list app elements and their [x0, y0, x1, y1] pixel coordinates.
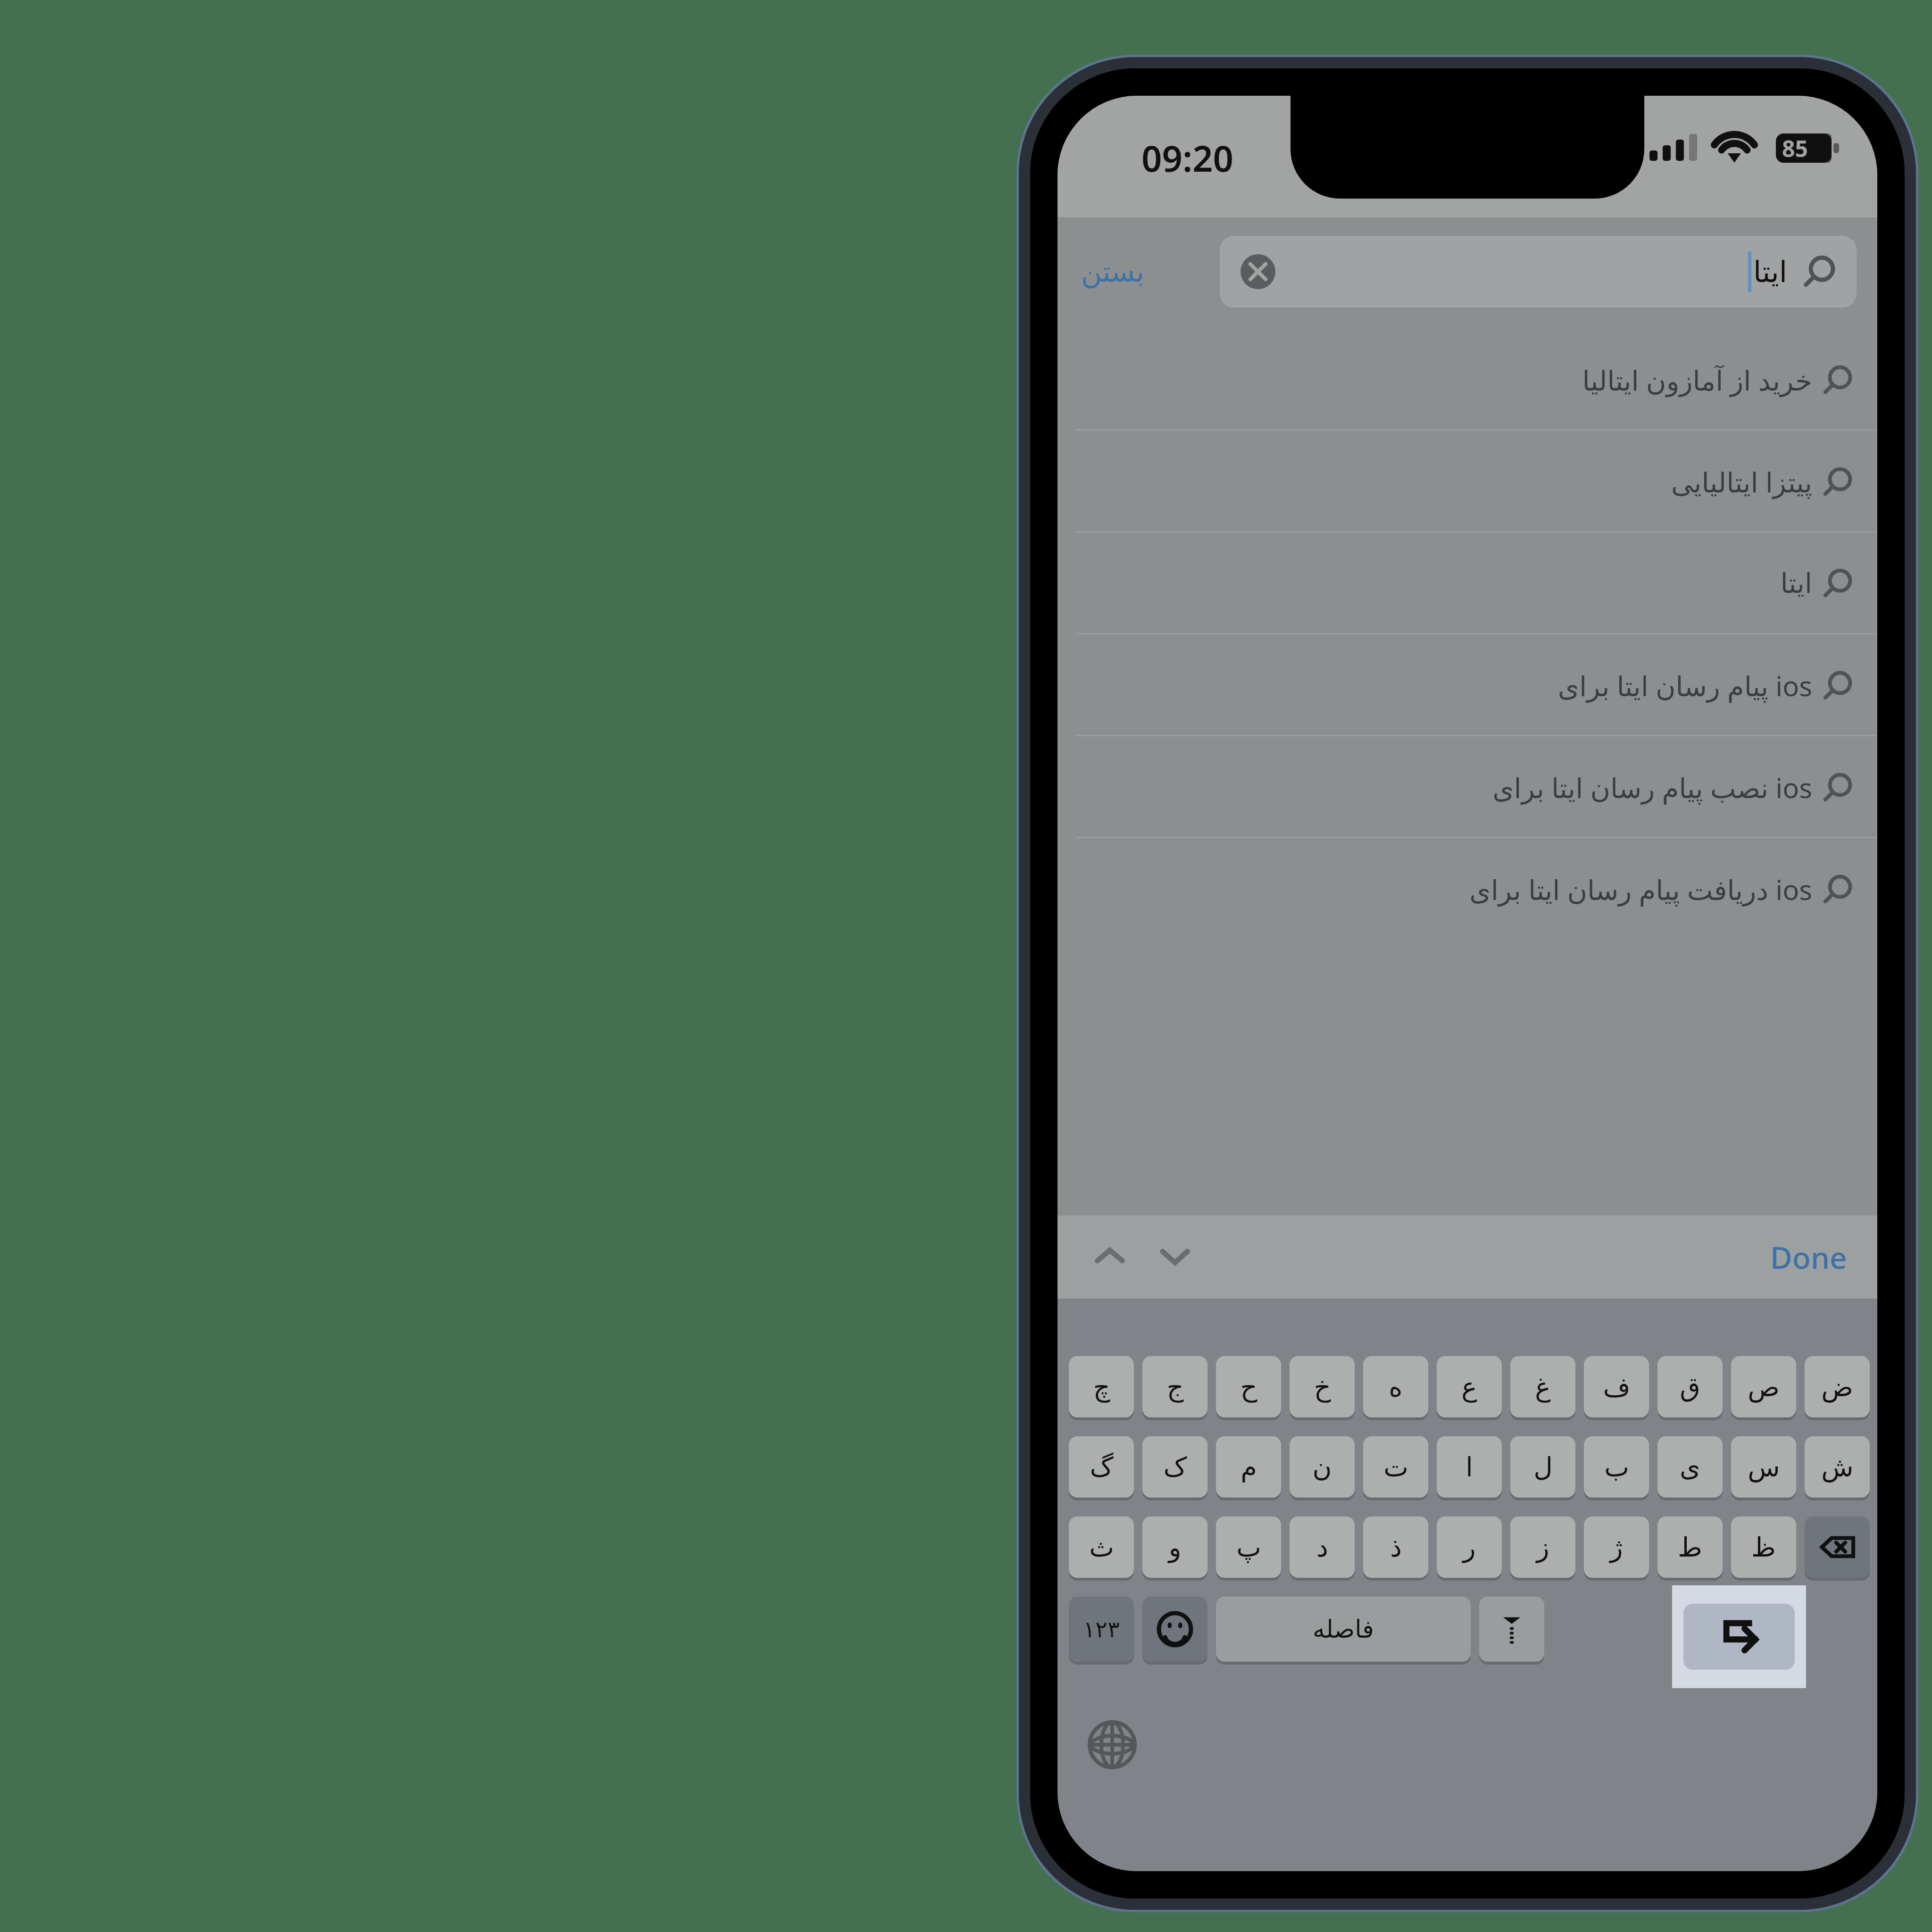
button[interactable]: Emoji: [1142, 1597, 1207, 1662]
other: Return: [1683, 1604, 1795, 1670]
button[interactable]: ع: [1437, 1356, 1502, 1417]
staticText: ب: [1604, 1452, 1629, 1482]
staticText: 85: [1782, 133, 1808, 164]
staticText: ث: [1089, 1532, 1114, 1563]
staticText: ع: [1461, 1372, 1477, 1402]
staticText: ۱۲۳: [1083, 1616, 1120, 1642]
button[interactable]: ر: [1437, 1516, 1502, 1578]
staticText: ص: [1748, 1372, 1780, 1402]
staticText: چ: [1093, 1372, 1110, 1402]
button[interactable]: د: [1290, 1516, 1355, 1578]
button[interactable]: فاصله: [1216, 1597, 1471, 1662]
staticText: دریافت پیام رسان ایتا برای ios: [1469, 871, 1812, 908]
button[interactable]: خ: [1290, 1356, 1355, 1417]
staticText: س: [1748, 1452, 1780, 1482]
staticText: م: [1241, 1452, 1257, 1482]
button[interactable]: ب: [1584, 1436, 1649, 1498]
staticText: فاصله: [1313, 1615, 1374, 1644]
staticText: Done: [1770, 1237, 1847, 1278]
staticText: غ: [1535, 1372, 1551, 1402]
button[interactable]: ز: [1510, 1516, 1575, 1578]
staticText: ژ: [1610, 1532, 1623, 1563]
button[interactable]: چ: [1069, 1356, 1134, 1417]
button[interactable]: غ: [1510, 1356, 1575, 1417]
button[interactable]: ۱۲۳: [1069, 1597, 1134, 1662]
button[interactable]: Dictation: [1479, 1597, 1544, 1662]
staticText: 09:20: [1141, 133, 1233, 183]
staticText: ض: [1821, 1372, 1853, 1402]
button[interactable]: ن: [1290, 1436, 1355, 1498]
staticText: ل: [1533, 1452, 1553, 1482]
button[interactable]: ح: [1216, 1356, 1281, 1417]
staticText: پیتزا ایتالیایی: [1671, 463, 1812, 500]
button[interactable]: ژ: [1584, 1516, 1649, 1578]
staticText: گ: [1090, 1452, 1114, 1482]
button[interactable]: Return: [1672, 1585, 1806, 1688]
staticText: د: [1316, 1532, 1328, 1563]
button[interactable]: ض: [1805, 1356, 1870, 1417]
staticText: ن: [1312, 1452, 1332, 1482]
button[interactable]: ق: [1657, 1356, 1723, 1417]
button[interactable]: خرید از آمازون ایتالیا: [1058, 329, 1877, 431]
staticText: خرید از آمازون ایتالیا: [1582, 361, 1812, 399]
button[interactable]: Switch keyboard language: [1080, 1713, 1144, 1777]
staticText: ا: [1466, 1452, 1473, 1482]
button[interactable]: ش: [1805, 1436, 1870, 1498]
button[interactable]: س: [1731, 1436, 1796, 1498]
staticText: ی: [1680, 1452, 1700, 1482]
button[interactable]: ه: [1363, 1356, 1428, 1417]
staticText: خ: [1314, 1372, 1331, 1402]
button[interactable]: ت: [1363, 1436, 1428, 1498]
button[interactable]: ایتا: [1220, 236, 1857, 308]
staticText: ایتا: [1780, 567, 1812, 600]
button[interactable]: Clear text: [1241, 254, 1275, 289]
staticText: ش: [1821, 1452, 1854, 1482]
button[interactable]: ل: [1510, 1436, 1575, 1498]
staticText: ظ: [1751, 1532, 1776, 1563]
button[interactable]: ا: [1437, 1436, 1502, 1498]
button[interactable]: ی: [1657, 1436, 1723, 1498]
staticText: ک: [1163, 1452, 1187, 1482]
staticText: anardoni.com: [1393, 298, 1584, 338]
button[interactable]: ث: [1069, 1516, 1134, 1578]
button[interactable]: پیتزا ایتالیایی: [1058, 431, 1877, 533]
staticText: ف: [1603, 1372, 1631, 1402]
staticText: ج: [1166, 1372, 1184, 1402]
button[interactable]: م: [1216, 1436, 1281, 1498]
button[interactable]: Backspace: [1805, 1516, 1870, 1578]
staticText: و: [1168, 1532, 1182, 1563]
button[interactable]: پیام رسان ایتا برای ios: [1058, 634, 1877, 736]
button[interactable]: Reload: [1829, 301, 1862, 334]
button[interactable]: بستن: [1081, 255, 1145, 288]
button[interactable]: ایتا: [1058, 533, 1877, 634]
staticText: پ: [1236, 1532, 1261, 1563]
button[interactable]: Previous field: [1084, 1231, 1136, 1283]
button[interactable]: Next field: [1149, 1231, 1201, 1283]
button[interactable]: دریافت پیام رسان ایتا برای ios: [1058, 838, 1877, 940]
staticText: ایتا: [1753, 255, 1788, 289]
button[interactable]: AA: [1074, 284, 1877, 351]
staticText: ح: [1240, 1372, 1257, 1402]
button[interactable]: ج: [1142, 1356, 1207, 1417]
staticText: ق: [1680, 1372, 1700, 1402]
button[interactable]: ف: [1584, 1356, 1649, 1417]
staticText: ت: [1383, 1452, 1408, 1482]
button[interactable]: ذ: [1363, 1516, 1428, 1578]
button[interactable]: ط: [1657, 1516, 1723, 1578]
staticText: ز: [1536, 1532, 1549, 1563]
staticText: پیام رسان ایتا برای ios: [1557, 667, 1812, 704]
button[interactable]: ص: [1731, 1356, 1796, 1417]
button[interactable]: نصب پیام رسان ایتا برای ios: [1058, 736, 1877, 838]
staticText: ر: [1463, 1532, 1476, 1563]
button[interactable]: ظ: [1731, 1516, 1796, 1578]
button[interactable]: و: [1142, 1516, 1207, 1578]
button[interactable]: پ: [1216, 1516, 1281, 1578]
button[interactable]: Done: [1770, 1237, 1847, 1278]
staticText: نصب پیام رسان ایتا برای ios: [1492, 769, 1812, 806]
button[interactable]: گ: [1069, 1436, 1134, 1498]
button[interactable]: ک: [1142, 1436, 1207, 1498]
staticText: بستن: [1081, 255, 1145, 288]
staticText: ه: [1389, 1372, 1403, 1402]
staticText: ذ: [1390, 1532, 1402, 1563]
